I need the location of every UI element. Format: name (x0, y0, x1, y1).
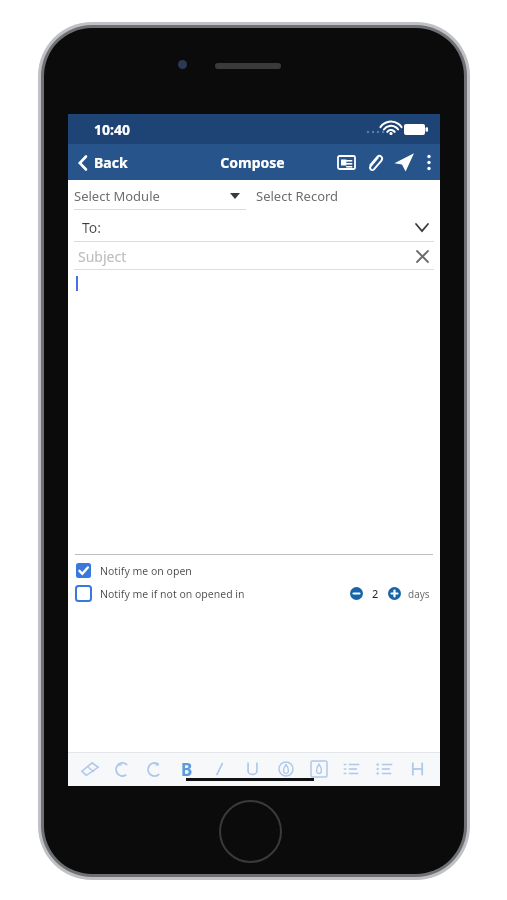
button[interactable]: Clear formatting (74, 752, 106, 786)
button[interactable]: Highlight color (302, 752, 335, 786)
button[interactable]: Back (68, 147, 136, 178)
button[interactable]: Attach (361, 148, 388, 177)
staticText: B (181, 758, 193, 781)
button[interactable]: Increase days (386, 585, 403, 602)
button[interactable]: Underline (236, 752, 269, 786)
button[interactable]: Notify me on open (68, 561, 440, 580)
button[interactable]: Select Module (74, 187, 246, 205)
button[interactable]: Numbered list (335, 752, 368, 786)
button[interactable]: Heading (401, 752, 434, 786)
staticText: days (408, 587, 430, 601)
button[interactable]: Select Record (254, 185, 341, 207)
button[interactable]: Bulleted list (368, 752, 401, 786)
button[interactable]: Notify me if not on opened in (76, 586, 245, 601)
button[interactable]: More options (420, 148, 438, 177)
staticText: To: (82, 218, 102, 237)
staticText: 10:40 (94, 120, 130, 139)
staticText: Select Module (74, 187, 160, 205)
staticText: Subject (78, 247, 127, 266)
staticText: Notify me if not on opened in (100, 587, 245, 601)
button[interactable]: Decrease days (348, 585, 365, 602)
button[interactable]: To: (68, 212, 440, 242)
staticText: Back (94, 153, 128, 172)
button[interactable]: Bold (170, 752, 203, 786)
staticText: Notify me on open (100, 564, 192, 578)
button[interactable]: Send (388, 146, 420, 178)
button[interactable]: Templates (332, 150, 361, 175)
button[interactable]: Redo (138, 752, 170, 786)
button[interactable]: Undo (106, 752, 138, 786)
button[interactable]: Text color (269, 752, 302, 786)
staticText: Compose (220, 153, 285, 172)
button[interactable]: Subject (68, 242, 440, 270)
button[interactable]: Italic (203, 752, 236, 786)
staticText: 2 (372, 586, 379, 601)
